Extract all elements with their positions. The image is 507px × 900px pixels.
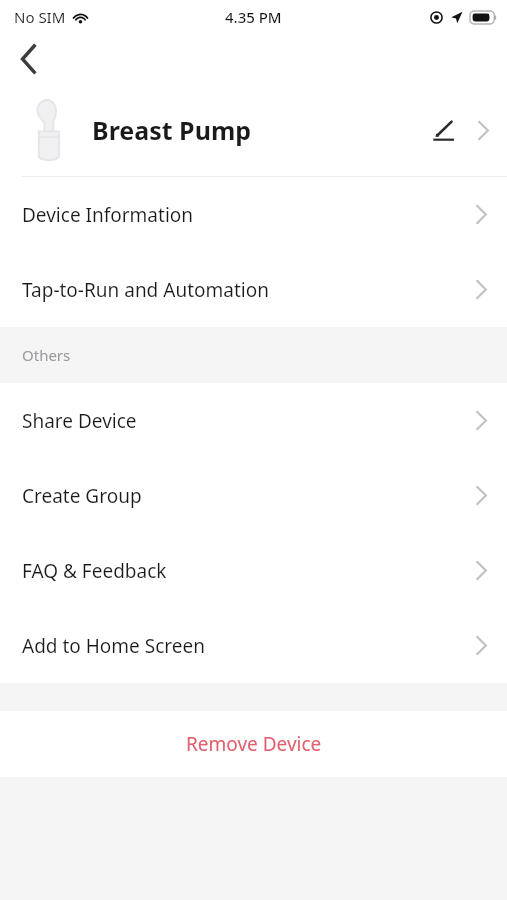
staticText: 4.35 PM [225,7,282,27]
staticText: Share Device [22,408,137,434]
button[interactable]: Breast Pump [0,84,507,176]
button[interactable]: FAQ & Feedback [0,533,507,608]
button[interactable]: Create Group [0,458,507,533]
button[interactable]: Tap-to-Run and Automation [0,252,507,327]
staticText: Remove Device [186,731,322,757]
staticText: Add to Home Screen [22,633,205,659]
button[interactable]: Device Information [0,177,507,252]
button[interactable]: Rename device [425,110,465,150]
staticText: FAQ & Feedback [22,558,167,584]
button[interactable]: Add to Home Screen [0,608,507,683]
staticText: Others [22,345,71,365]
button[interactable]: Back [6,37,50,81]
button[interactable]: Remove Device [0,711,507,777]
staticText: No SIM [14,7,66,27]
staticText: Breast Pump [92,113,252,147]
staticText: Create Group [22,483,142,509]
staticText: Tap-to-Run and Automation [22,277,269,303]
button[interactable]: Share Device [0,383,507,458]
staticText: Device Information [22,202,194,228]
